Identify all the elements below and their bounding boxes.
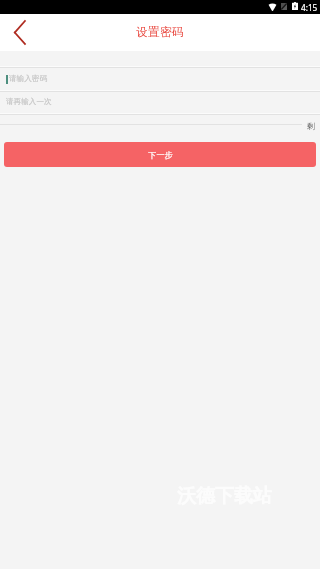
staticText: 下一步 bbox=[148, 150, 173, 160]
button[interactable]: Back bbox=[0, 14, 38, 51]
button[interactable]: 下一步 bbox=[4, 142, 316, 167]
button[interactable]: 请再输入一次 bbox=[0, 91, 320, 112]
staticText: 请输入密码 bbox=[9, 74, 47, 84]
staticText: 请再输入一次 bbox=[6, 97, 52, 107]
staticText: 沃德下载站 bbox=[177, 484, 272, 508]
staticText: 设置密码 bbox=[136, 25, 184, 40]
button[interactable]: 请输入密码 bbox=[0, 68, 320, 90]
staticText: 4:15 bbox=[301, 2, 318, 13]
button[interactable] bbox=[0, 114, 320, 124]
staticText: 剩 bbox=[307, 121, 316, 131]
